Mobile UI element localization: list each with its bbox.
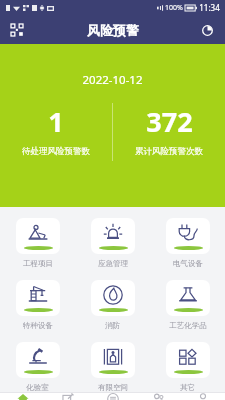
button[interactable]: Electrical equipment	[150, 218, 225, 268]
button[interactable]: Fire safety	[75, 280, 150, 330]
staticText: 有限空间	[98, 383, 128, 392]
staticText: 应急管理	[98, 259, 128, 268]
button[interactable]: Special equipment	[0, 280, 75, 330]
button[interactable]: Laboratory	[0, 342, 75, 392]
button[interactable]: Other	[150, 342, 225, 392]
staticText: 风险预警	[87, 22, 139, 38]
button[interactable]: 消息	[90, 393, 135, 400]
staticText: 372	[146, 103, 193, 140]
button[interactable]: 首页	[0, 393, 45, 400]
staticText: 11:34	[199, 2, 220, 13]
button[interactable]: Engineering projects	[0, 218, 75, 268]
staticText: 工艺化学品	[169, 321, 207, 330]
staticText: 工程项目	[23, 259, 53, 268]
staticText: 其它	[180, 383, 195, 392]
button[interactable]: 发布	[45, 393, 90, 400]
staticText: 电气设备	[173, 259, 203, 268]
button[interactable]: Emergency management	[75, 218, 150, 268]
staticText: 累计风险预警次数	[135, 146, 203, 157]
button[interactable]: 群组	[135, 393, 180, 400]
staticText: 1	[48, 103, 64, 140]
staticText: 特种设备	[23, 321, 53, 330]
staticText: 100%	[165, 3, 183, 13]
button[interactable]: 1	[0, 103, 112, 157]
button[interactable]: 我的	[180, 393, 225, 400]
button[interactable]: Scan code	[6, 19, 28, 41]
button[interactable]: Statistics	[196, 19, 218, 41]
staticText: 化验室	[26, 383, 49, 392]
staticText: 待处理风险预警数	[22, 146, 90, 157]
staticText: 2022-10-12	[82, 72, 143, 88]
button[interactable]: Process chemicals	[150, 280, 225, 330]
staticText: 消防	[105, 321, 120, 330]
button[interactable]: Confined space	[75, 342, 150, 392]
button[interactable]: 372	[113, 103, 225, 157]
